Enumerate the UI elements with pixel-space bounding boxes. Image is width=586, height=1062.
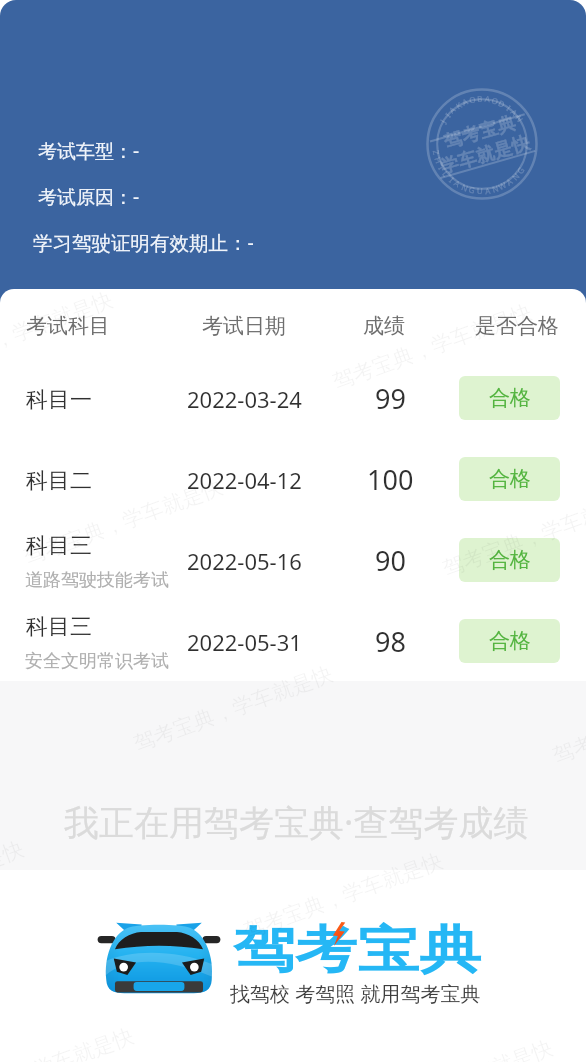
staticText: 驾考宝典，学车就是快 <box>439 486 586 582</box>
staticText: 2022-05-31 <box>187 627 302 657</box>
staticText: 找驾校 考驾照 就用驾考宝典 <box>230 980 481 1007</box>
staticText: 科目一 <box>26 386 92 414</box>
staticText: 驾考宝典，学车就是快 <box>240 848 446 944</box>
button[interactable]: 科目二 <box>0 439 586 520</box>
staticText: 科目三 <box>26 613 92 641</box>
staticText: 道路驾驶技能考试 <box>25 569 169 592</box>
staticText: 考试科目 <box>26 313 110 339</box>
staticText: N <box>509 170 522 182</box>
staticText: L <box>440 168 452 179</box>
staticText: I <box>442 110 453 120</box>
staticText: 驾考宝典，学车就是快 <box>549 673 586 769</box>
button[interactable]: 科目一 <box>0 358 586 439</box>
staticText: 98 <box>375 623 406 660</box>
staticText: I <box>436 164 447 172</box>
staticText: O <box>490 94 500 107</box>
staticText: 驾考宝典，学车就是快 <box>0 836 27 932</box>
staticText: 2022-03-24 <box>187 384 302 414</box>
staticText: I <box>505 102 514 113</box>
staticText: O <box>468 93 477 105</box>
staticText: A <box>484 93 492 104</box>
staticText: A <box>509 106 521 118</box>
staticText: J <box>437 117 448 125</box>
staticText: A <box>452 177 463 190</box>
staticText: 90 <box>375 542 406 579</box>
staticText: 安全文明常识考试 <box>25 650 169 673</box>
staticText: A <box>446 103 458 115</box>
staticText: G <box>514 165 527 176</box>
staticText: 2022-04-12 <box>187 465 302 495</box>
staticText: 科目二 <box>26 467 92 495</box>
staticText: 驾考宝典，学车就是快 <box>130 661 336 757</box>
staticText: 2022-05-16 <box>187 546 302 576</box>
staticText: 是否合格 <box>475 313 559 339</box>
staticText: U <box>477 185 483 196</box>
staticText: 驾考宝典 <box>441 112 519 154</box>
staticText: N <box>491 182 501 195</box>
staticText: W <box>496 179 508 192</box>
staticText: 考试原因：- <box>38 184 140 210</box>
staticText: 成绩 <box>363 313 405 339</box>
staticText: 学车就是快 <box>438 131 533 179</box>
staticText: Z <box>431 149 442 156</box>
staticText: 合格 <box>489 466 531 492</box>
staticText: N <box>513 113 526 125</box>
staticText: 驾考宝典，学车就是快 <box>20 474 226 570</box>
staticText: 合格 <box>489 547 531 573</box>
staticText: 99 <box>375 380 406 417</box>
staticText: D <box>497 97 507 110</box>
staticText: 驾考宝典，学车就是快 <box>329 299 535 395</box>
staticText: I <box>447 175 457 185</box>
staticText: 100 <box>367 461 414 498</box>
staticText: 驾考宝典，学车就是快 <box>0 289 116 383</box>
staticText: K <box>454 99 464 111</box>
staticText: A <box>460 95 470 108</box>
staticText: 合格 <box>489 385 531 411</box>
staticText: 考试日期 <box>202 313 286 339</box>
staticText: A <box>484 185 492 196</box>
staticText: N <box>460 181 471 194</box>
button[interactable]: 合格 <box>459 457 560 501</box>
staticText: 学习驾驶证明有效期止：- <box>33 229 254 256</box>
button[interactable]: 合格 <box>459 376 560 420</box>
staticText: G <box>468 183 476 195</box>
button[interactable]: 科目三 <box>0 601 586 681</box>
staticText: 考试车型：- <box>38 138 140 164</box>
staticText: B <box>477 93 483 104</box>
staticText: 驾考宝典 <box>233 918 481 982</box>
button[interactable]: 合格 <box>459 619 560 663</box>
staticText: H <box>432 155 445 165</box>
staticText: 合格 <box>489 628 531 654</box>
button[interactable]: 科目三 <box>0 520 586 601</box>
staticText: A <box>504 175 515 188</box>
staticText: 科目三 <box>26 532 92 560</box>
staticText: 我正在用驾考宝典·查驾考成绩 <box>64 798 529 846</box>
button[interactable]: 合格 <box>459 538 560 582</box>
